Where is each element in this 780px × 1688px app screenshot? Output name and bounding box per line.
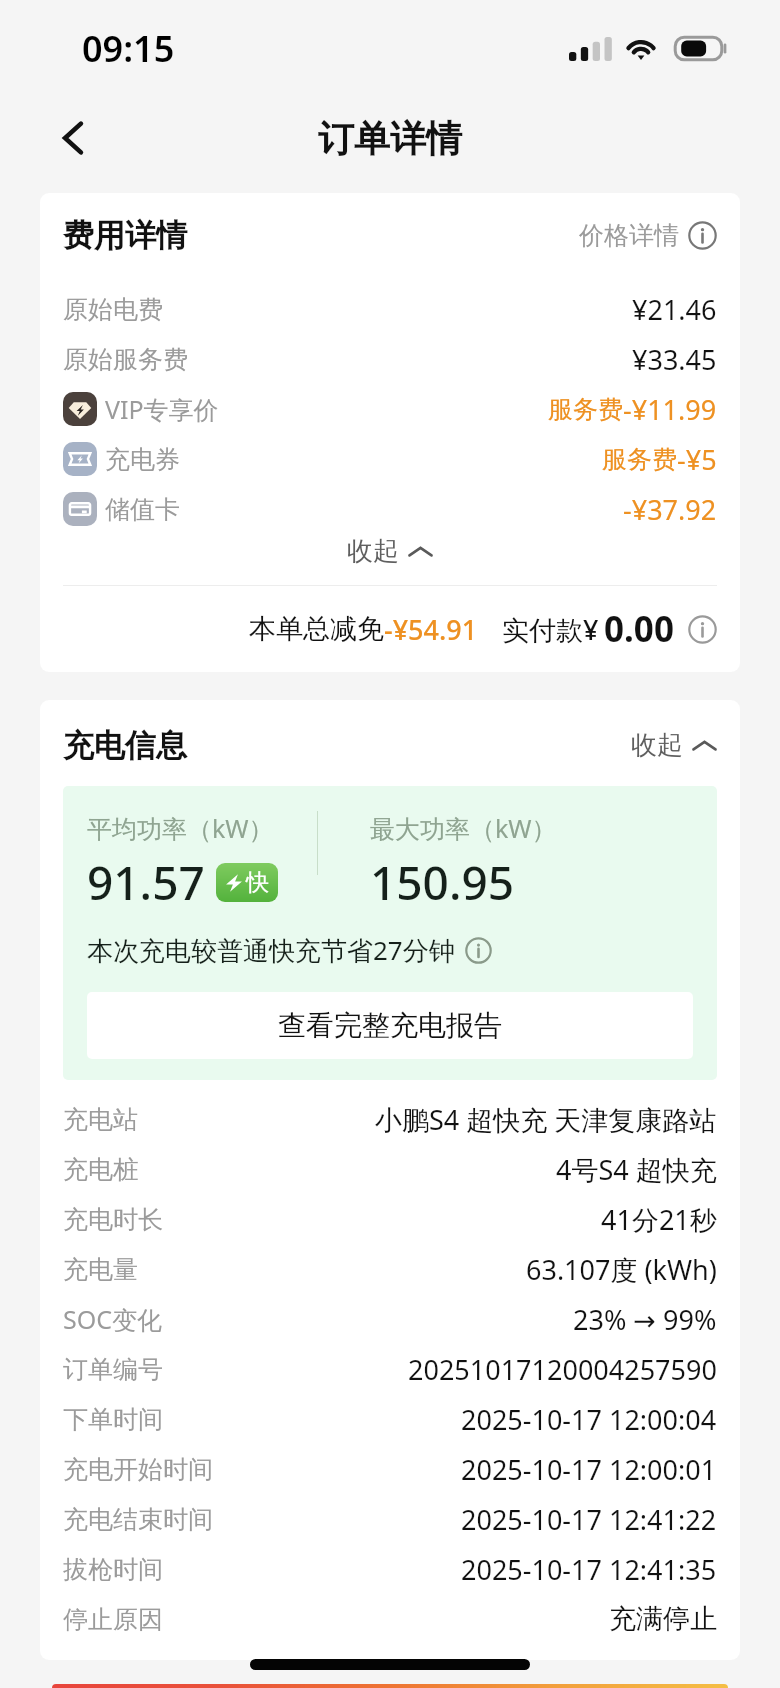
staticText: 实付款¥	[502, 611, 599, 648]
staticText: 收起	[347, 535, 399, 568]
staticText: 费用详情	[63, 216, 187, 255]
staticText: 0.00	[604, 605, 674, 653]
staticText: 拔枪时间	[63, 1554, 163, 1585]
staticText: 充电结束时间	[63, 1504, 213, 1535]
staticText: 本单总减免	[249, 612, 384, 646]
staticText: 服务费	[602, 444, 677, 475]
staticText: 2025-10-17 12:41:35	[461, 1551, 717, 1588]
staticText: 充电量	[63, 1254, 138, 1285]
staticText: 20251017120004257590	[408, 1351, 717, 1388]
staticText: ¥21.46	[632, 291, 717, 328]
staticText: 41分21秒	[601, 1201, 717, 1238]
staticText: 充电桩	[63, 1154, 138, 1185]
staticText: 09:15	[82, 24, 175, 73]
staticText: 充电时长	[63, 1204, 163, 1235]
button[interactable]: 收起	[63, 534, 717, 568]
staticText: 查看完整充电报告	[278, 1008, 502, 1043]
staticText: 小鹏S4 超快充 天津复康路站	[375, 1101, 717, 1138]
staticText: 原始服务费	[63, 344, 188, 375]
staticText: 充满停止	[609, 1602, 717, 1636]
staticText: 价格详情	[579, 220, 679, 251]
button[interactable]: 收起	[631, 729, 717, 762]
button[interactable]: 查看完整充电报告	[87, 992, 693, 1059]
staticText: 63.107度 (kWh)	[526, 1251, 717, 1288]
staticText: 最大功率（kW）	[370, 811, 557, 845]
staticText: 2025-10-17 12:41:22	[461, 1501, 717, 1538]
staticText: 2025-10-17 12:00:01	[461, 1451, 717, 1488]
staticText: 服务费	[548, 394, 623, 425]
staticText: VIP专享价	[105, 392, 219, 426]
staticText: SOC变化	[63, 1302, 163, 1336]
staticText: 2025-10-17 12:00:04	[461, 1401, 717, 1438]
staticText: 订单编号	[63, 1354, 163, 1385]
staticText: 下单时间	[63, 1404, 163, 1435]
staticText: 快	[246, 868, 269, 897]
staticText: -¥5	[677, 441, 717, 478]
staticText: 91.57	[87, 851, 205, 914]
staticText: 充电站	[63, 1104, 138, 1135]
staticText: -¥37.92	[623, 491, 717, 528]
staticText: 充电开始时间	[63, 1454, 213, 1485]
staticText: 23% → 99%	[573, 1301, 717, 1338]
staticText: 4号S4 超快充	[556, 1151, 717, 1188]
staticText: 本次充电较普通快充节省27分钟	[87, 932, 455, 968]
staticText: 停止原因	[63, 1604, 163, 1635]
staticText: 充电信息	[63, 726, 187, 765]
staticText: 充电券	[105, 444, 180, 475]
staticText: 150.95	[370, 851, 515, 914]
staticText: -¥11.99	[623, 391, 717, 428]
staticText: 平均功率（kW）	[87, 811, 274, 845]
staticText: 原始电费	[63, 294, 163, 325]
button[interactable]: Back	[42, 107, 104, 169]
staticText: ¥33.45	[632, 341, 717, 378]
staticText: 收起	[631, 729, 683, 762]
staticText: -¥54.91	[384, 611, 478, 648]
staticText: 订单详情	[318, 116, 462, 161]
button[interactable]: 价格详情	[579, 220, 717, 251]
staticText: 储值卡	[105, 494, 180, 525]
